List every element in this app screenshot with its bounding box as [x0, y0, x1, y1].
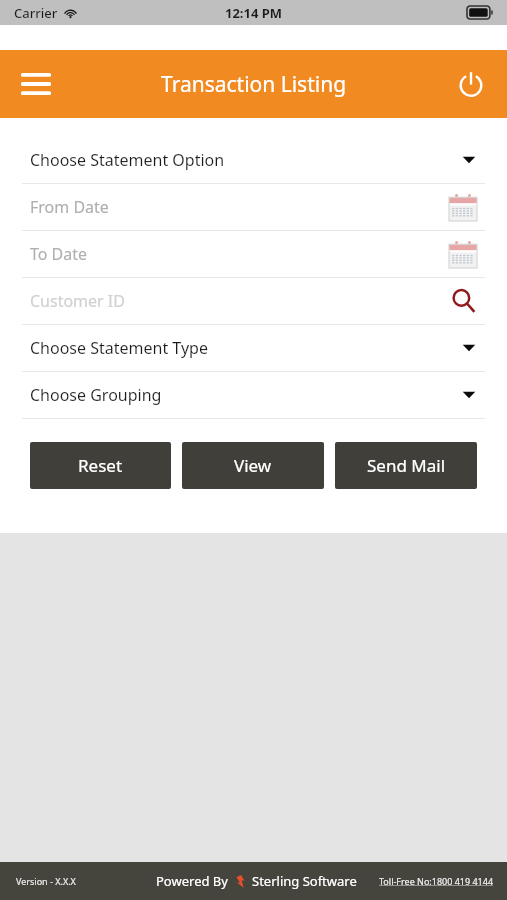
- button[interactable]: To Date: [22, 231, 485, 278]
- staticText: Powered By: [156, 872, 228, 890]
- button[interactable]: Choose Statement Type: [22, 325, 485, 372]
- staticText: Choose Grouping: [30, 384, 461, 406]
- staticText: Carrier: [14, 4, 58, 22]
- staticText: 12:14 PM: [225, 4, 283, 22]
- button[interactable]: Choose Grouping: [22, 372, 485, 419]
- button[interactable]: Send Mail: [335, 442, 477, 489]
- staticText: Sterling Software: [252, 872, 357, 890]
- button[interactable]: From Date: [22, 184, 485, 231]
- button[interactable]: Logout: [445, 58, 497, 110]
- button[interactable]: Toll-Free No:1800 419 4144: [379, 875, 494, 887]
- button[interactable]: View: [182, 442, 324, 489]
- staticText: Transaction Listing: [161, 70, 347, 99]
- staticText: Version - X.X.X: [16, 875, 76, 887]
- staticText: Send Mail: [367, 454, 446, 477]
- staticText: To Date: [30, 243, 449, 265]
- staticText: From Date: [30, 196, 449, 218]
- staticText: Choose Statement Type: [30, 337, 461, 359]
- staticText: View: [234, 454, 272, 477]
- button[interactable]: Customer ID: [22, 278, 485, 325]
- staticText: Reset: [78, 454, 123, 477]
- staticText: Choose Statement Option: [30, 149, 461, 171]
- button[interactable]: Reset: [30, 442, 171, 489]
- staticText: Customer ID: [30, 290, 451, 312]
- button[interactable]: Choose Statement Option: [22, 137, 485, 184]
- button[interactable]: Menu: [10, 58, 62, 110]
